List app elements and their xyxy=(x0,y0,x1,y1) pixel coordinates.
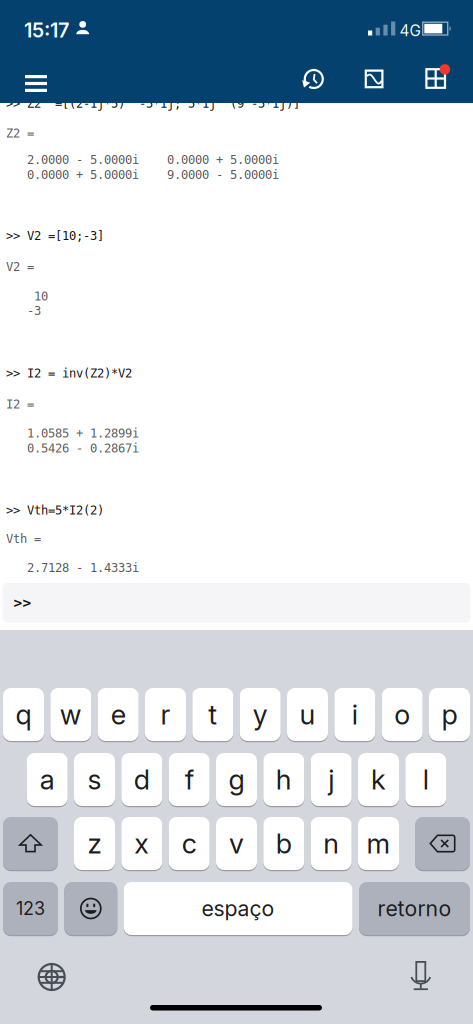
staticText: j xyxy=(328,763,334,796)
staticText: Vth = xyxy=(6,532,41,546)
staticText: 0.5426 - 0.2867i xyxy=(6,441,139,455)
staticText: V2 = xyxy=(6,260,34,274)
button[interactable]: l xyxy=(405,753,446,807)
staticText: q xyxy=(15,698,31,731)
staticText: p xyxy=(441,698,457,731)
button[interactable]: j xyxy=(311,753,352,807)
button[interactable]: i xyxy=(334,688,375,742)
staticText: -3 xyxy=(6,304,41,318)
button[interactable]: Emoji xyxy=(64,882,117,936)
button[interactable]: m xyxy=(358,817,399,871)
button[interactable]: Workspace xyxy=(425,67,451,90)
staticText: k xyxy=(371,763,386,796)
button[interactable]: o xyxy=(382,688,423,742)
button[interactable]: y xyxy=(240,688,281,742)
staticText: z xyxy=(87,827,101,860)
button[interactable]: Menu xyxy=(25,75,47,92)
staticText: s xyxy=(87,763,101,796)
button[interactable]: x xyxy=(121,817,162,871)
staticText: x xyxy=(134,827,149,860)
button[interactable]: Shift xyxy=(3,817,58,871)
staticText: m xyxy=(366,827,390,860)
staticText: n xyxy=(323,827,339,860)
staticText: b xyxy=(276,827,292,860)
staticText: h xyxy=(276,763,292,796)
staticText: r xyxy=(160,698,170,731)
staticText: 0.0000 + 5.0000i 9.0000 - 5.0000i xyxy=(6,168,279,182)
button[interactable]: h xyxy=(263,753,304,807)
button[interactable]: 123 xyxy=(3,882,58,936)
button[interactable]: espaço xyxy=(124,882,353,936)
staticText: 4G xyxy=(399,21,420,40)
button[interactable]: n xyxy=(311,817,352,871)
staticText: f xyxy=(185,763,194,796)
staticText: 123 xyxy=(16,898,45,919)
staticText: 2.0000 - 5.0000i 0.0000 + 5.0000i xyxy=(6,153,279,167)
button[interactable]: Delete xyxy=(415,817,470,871)
button[interactable]: a xyxy=(27,753,68,807)
staticText: l xyxy=(423,763,429,796)
button[interactable]: d xyxy=(121,753,162,807)
button[interactable]: Dictate xyxy=(410,961,431,990)
button[interactable]: g xyxy=(216,753,257,807)
staticText: t xyxy=(208,698,217,731)
button[interactable]: Command input xyxy=(2,583,470,622)
staticText: 10 xyxy=(6,289,48,303)
button[interactable]: Command history xyxy=(303,68,325,90)
staticText: a xyxy=(40,763,55,796)
button[interactable]: z xyxy=(74,817,115,871)
staticText: 1.0585 + 1.2899i xyxy=(6,426,139,440)
button[interactable]: k xyxy=(358,753,399,807)
staticText: Z2 = xyxy=(6,126,34,140)
button[interactable]: s xyxy=(74,753,115,807)
staticText: i xyxy=(352,698,358,731)
staticText: >> V2 =[10;-3] xyxy=(6,229,104,243)
button[interactable]: w xyxy=(50,688,91,742)
staticText: u xyxy=(299,698,315,731)
button[interactable]: c xyxy=(169,817,210,871)
button[interactable]: retorno xyxy=(359,882,470,936)
button[interactable]: b xyxy=(263,817,304,871)
staticText: retorno xyxy=(377,896,451,921)
staticText: >> I2 = inv(Z2)*V2 xyxy=(6,366,132,380)
button[interactable]: t xyxy=(192,688,233,742)
button[interactable]: u xyxy=(287,688,328,742)
staticText: e xyxy=(111,698,126,731)
staticText: >> Z2 =[(2-1j*5) -5*1j; 5*1j (9 -5*1j)] xyxy=(6,96,300,111)
staticText: c xyxy=(182,827,197,860)
button[interactable]: r xyxy=(145,688,186,742)
staticText: d xyxy=(134,763,150,796)
staticText: w xyxy=(60,698,82,731)
button[interactable]: q xyxy=(3,688,44,742)
staticText: >> xyxy=(13,594,31,611)
staticText: 15:17 xyxy=(24,18,69,42)
staticText: o xyxy=(394,698,410,731)
staticText: y xyxy=(253,698,268,731)
button[interactable]: e xyxy=(98,688,139,742)
staticText: >> Vth=5*I2(2) xyxy=(6,503,104,517)
staticText: I2 = xyxy=(6,397,34,411)
staticText: espaço xyxy=(202,896,275,921)
staticText: 2.7128 - 1.4333i xyxy=(6,561,139,575)
staticText: g xyxy=(228,763,244,796)
button[interactable]: Next keyboard xyxy=(38,963,66,991)
button[interactable]: f xyxy=(169,753,210,807)
button[interactable]: v xyxy=(216,817,257,871)
button[interactable]: Figures xyxy=(365,69,384,88)
button[interactable]: p xyxy=(429,688,470,742)
staticText: v xyxy=(229,827,244,860)
